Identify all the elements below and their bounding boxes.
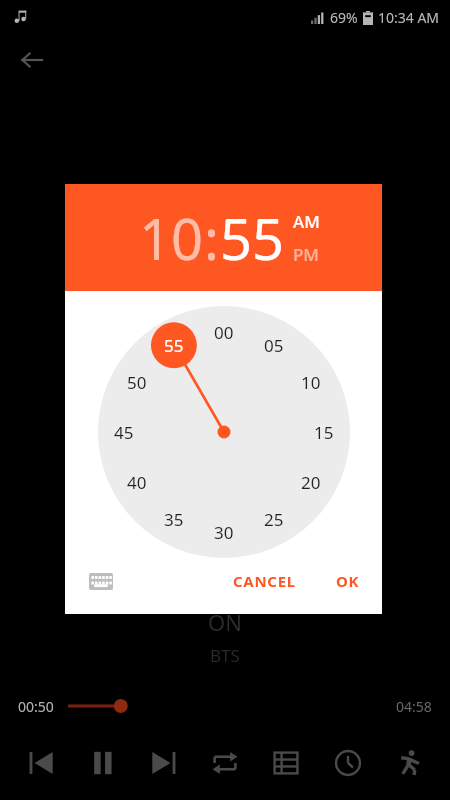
button[interactable]: Repeat bbox=[199, 737, 251, 789]
staticText: 10 bbox=[139, 200, 204, 276]
button[interactable]: Timer bbox=[322, 737, 374, 789]
button[interactable]: 55 bbox=[220, 200, 285, 276]
button[interactable]: Playlist bbox=[260, 737, 312, 789]
staticText: 55 bbox=[164, 334, 184, 357]
button[interactable]: OK bbox=[326, 563, 370, 599]
staticText: 05 bbox=[264, 334, 284, 357]
button[interactable]: Switch to keyboard input bbox=[81, 561, 121, 601]
button[interactable]: Back bbox=[8, 36, 56, 84]
staticText: 20 bbox=[301, 471, 321, 494]
button[interactable]: CANCEL bbox=[223, 563, 306, 599]
staticText: BTS bbox=[210, 644, 240, 667]
staticText: AM bbox=[293, 210, 320, 233]
button[interactable]: 10 bbox=[139, 200, 204, 276]
staticText: 04:58 bbox=[396, 697, 432, 716]
button[interactable]: Next bbox=[138, 737, 190, 789]
button[interactable]: PM bbox=[293, 243, 319, 266]
button[interactable] bbox=[68, 694, 382, 718]
staticText: 10:34 AM bbox=[378, 8, 440, 27]
staticText: 30 bbox=[214, 521, 234, 544]
button[interactable]: Pause bbox=[77, 737, 129, 789]
staticText: 50 bbox=[127, 371, 147, 394]
button[interactable] bbox=[98, 306, 350, 558]
staticText: 35 bbox=[164, 508, 184, 531]
staticText: ON bbox=[208, 607, 242, 637]
button[interactable]: Walk bbox=[383, 737, 435, 789]
staticText: PM bbox=[293, 243, 319, 266]
staticText: 45 bbox=[114, 421, 134, 444]
staticText: : bbox=[204, 200, 220, 276]
staticText: CANCEL bbox=[233, 571, 296, 591]
staticText: 00:50 bbox=[18, 697, 54, 716]
staticText: 25 bbox=[264, 508, 284, 531]
staticText: OK bbox=[336, 571, 360, 591]
button[interactable]: AM bbox=[293, 210, 320, 233]
staticText: 00 bbox=[214, 321, 234, 344]
staticText: 55 bbox=[220, 200, 285, 276]
staticText: 40 bbox=[127, 471, 147, 494]
staticText: 15 bbox=[314, 421, 334, 444]
staticText: 69% bbox=[330, 8, 358, 27]
button[interactable]: Previous bbox=[15, 737, 67, 789]
staticText: 10 bbox=[301, 371, 321, 394]
